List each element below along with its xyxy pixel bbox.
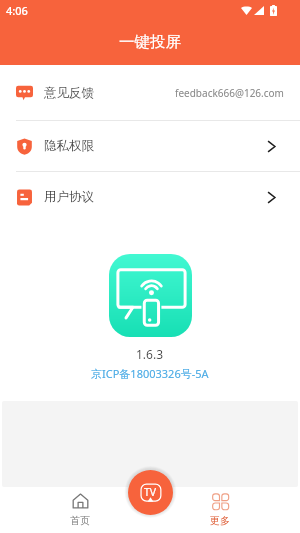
button[interactable]: 京ICP备18003326号-5A — [91, 366, 209, 381]
button[interactable]: 更多 — [196, 490, 244, 530]
button[interactable]: 用户协议 — [0, 172, 300, 222]
staticText: 4:06 — [6, 3, 28, 18]
staticText: 用户协议 — [44, 189, 94, 205]
staticText: 隐私权限 — [44, 138, 94, 154]
button[interactable]: 意见反馈 — [0, 65, 300, 120]
staticText: 首页 — [70, 514, 90, 527]
staticText: 一键投屏 — [119, 32, 181, 52]
button[interactable]: 隐私权限 — [0, 121, 300, 171]
button[interactable]: Cast to TV — [128, 470, 173, 515]
staticText: 1.6.3 — [136, 346, 164, 362]
button[interactable]: 首页 — [56, 490, 104, 530]
staticText: feedback666@126.com — [175, 86, 284, 100]
staticText: 更多 — [210, 514, 230, 527]
staticText: 意见反馈 — [44, 85, 94, 101]
staticText: TV — [144, 485, 157, 499]
